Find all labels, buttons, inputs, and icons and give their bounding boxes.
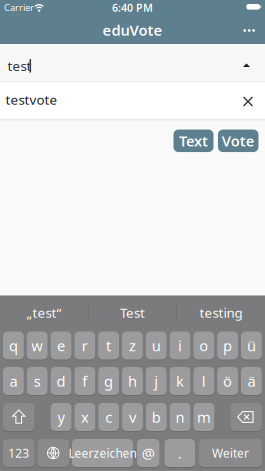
button[interactable]: b — [146, 403, 167, 431]
staticText: eduVote — [102, 20, 162, 40]
staticText: v — [129, 407, 136, 427]
staticText: @ — [142, 443, 155, 463]
staticText: e — [57, 336, 65, 355]
button[interactable]: d — [51, 367, 71, 395]
button[interactable]: Question text, collapse suggestions — [0, 44, 265, 82]
staticText: d — [56, 371, 65, 391]
button[interactable]: p — [217, 331, 238, 359]
staticText: u — [152, 336, 161, 355]
button[interactable]: w — [27, 331, 48, 359]
staticText: ü — [247, 336, 256, 355]
button[interactable]: ä — [241, 367, 262, 395]
staticText: x — [81, 407, 89, 427]
staticText: p — [223, 336, 232, 355]
staticText: „test“ — [27, 304, 62, 321]
button[interactable]: r — [74, 331, 95, 359]
button[interactable]: j — [146, 367, 167, 395]
button[interactable]: Shift — [3, 403, 34, 431]
button[interactable]: u — [146, 331, 167, 359]
button[interactable]: l — [193, 367, 214, 395]
button[interactable]: o — [193, 331, 214, 359]
button[interactable]: s — [27, 367, 48, 395]
staticText: y — [58, 407, 65, 427]
staticText: Vote — [222, 131, 255, 151]
button[interactable]: k — [170, 367, 190, 395]
button[interactable]: t — [98, 331, 119, 359]
button[interactable]: testvote — [0, 82, 265, 119]
staticText: z — [129, 336, 136, 355]
staticText: a — [9, 371, 17, 391]
staticText: h — [128, 371, 137, 391]
button[interactable]: e — [51, 331, 71, 359]
button[interactable]: Test — [89, 299, 175, 325]
button[interactable]: 123 — [3, 439, 34, 467]
button[interactable]: Clear — [236, 89, 260, 113]
staticText: l — [202, 371, 206, 391]
button[interactable]: x — [74, 403, 95, 431]
staticText: Text — [179, 131, 208, 151]
button[interactable]: v — [122, 403, 143, 431]
button[interactable]: q — [3, 331, 24, 359]
button[interactable]: Leerzeichen — [72, 439, 133, 467]
staticText: . — [178, 443, 182, 463]
staticText: 123 — [8, 445, 29, 461]
staticText: n — [176, 407, 185, 427]
staticText: j — [154, 371, 158, 391]
button[interactable]: Text — [173, 130, 213, 152]
staticText: Carrier — [4, 1, 34, 14]
button[interactable]: h — [122, 367, 143, 395]
button[interactable]: m — [193, 403, 214, 431]
staticText: w — [31, 336, 43, 355]
button[interactable]: y — [51, 403, 71, 431]
button[interactable]: f — [74, 367, 95, 395]
staticText: b — [152, 407, 161, 427]
button[interactable]: n — [170, 403, 190, 431]
staticText: Leerzeichen — [68, 445, 136, 461]
button[interactable]: c — [98, 403, 119, 431]
staticText: i — [178, 336, 182, 355]
staticText: o — [199, 336, 208, 355]
staticText: s — [34, 371, 41, 391]
button[interactable]: i — [170, 331, 190, 359]
button[interactable]: ö — [217, 367, 238, 395]
button[interactable]: g — [98, 367, 119, 395]
staticText: testvote — [5, 91, 57, 108]
button[interactable]: a — [3, 367, 24, 395]
staticText: Test — [120, 304, 145, 321]
staticText: g — [104, 371, 113, 391]
staticText: r — [82, 336, 88, 355]
staticText: Weiter — [212, 445, 249, 461]
staticText: k — [176, 371, 184, 391]
button[interactable]: „test“ — [1, 299, 87, 325]
staticText: m — [197, 407, 211, 427]
button[interactable]: Delete — [230, 403, 262, 431]
staticText: 6:40 PM — [112, 0, 153, 15]
staticText: c — [105, 407, 112, 427]
button[interactable]: . — [164, 439, 195, 467]
button[interactable]: More — [237, 18, 261, 42]
button[interactable]: ü — [241, 331, 262, 359]
staticText: t — [106, 336, 111, 355]
button[interactable]: Weiter — [199, 439, 262, 467]
staticText: ö — [223, 371, 232, 391]
button[interactable]: z — [122, 331, 143, 359]
staticText: test — [7, 57, 31, 75]
button[interactable]: Vote — [218, 130, 258, 152]
button[interactable]: testing — [178, 299, 264, 325]
button[interactable]: @ — [137, 439, 159, 467]
staticText: ä — [247, 371, 255, 391]
staticText: q — [9, 336, 18, 355]
staticText: testing — [199, 304, 242, 321]
staticText: f — [82, 371, 87, 391]
button[interactable]: Next keyboard — [37, 439, 69, 467]
